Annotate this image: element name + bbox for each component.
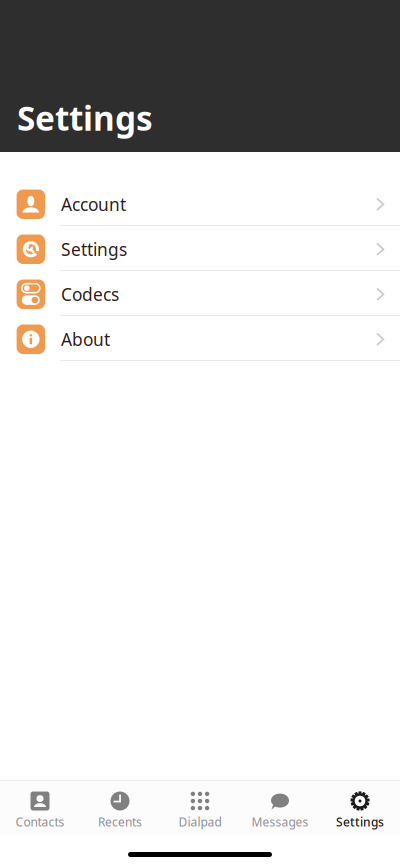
button[interactable]: Account bbox=[0, 181, 400, 226]
staticText: Recents bbox=[98, 814, 142, 830]
staticText: About bbox=[61, 328, 110, 351]
staticText: Dialpad bbox=[178, 814, 221, 830]
button[interactable]: Contacts bbox=[0, 781, 80, 835]
staticText: Settings bbox=[61, 238, 127, 261]
button[interactable]: Settings bbox=[0, 226, 400, 271]
staticText: Contacts bbox=[15, 814, 64, 830]
staticText: Account bbox=[61, 193, 126, 216]
staticText: Codecs bbox=[61, 283, 119, 306]
button[interactable]: About bbox=[0, 316, 400, 361]
button[interactable]: Recents bbox=[80, 781, 160, 835]
staticText: Settings bbox=[17, 96, 153, 140]
button[interactable]: Dialpad bbox=[160, 781, 240, 835]
button[interactable]: Messages bbox=[240, 781, 320, 835]
staticText: Messages bbox=[251, 814, 308, 830]
button[interactable]: Codecs bbox=[0, 271, 400, 316]
staticText: Settings bbox=[336, 814, 384, 830]
button[interactable]: Settings bbox=[320, 781, 400, 835]
